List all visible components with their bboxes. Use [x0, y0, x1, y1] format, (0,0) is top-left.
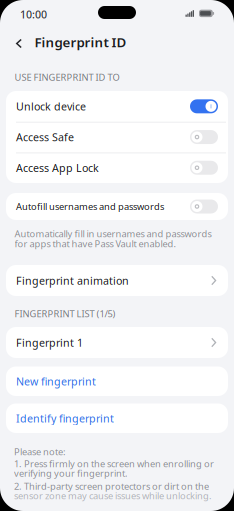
- staticText: 1. Press firmly on the screen when enrol…: [14, 457, 214, 470]
- staticText: for apps that have Pass Vault enabled.: [14, 237, 176, 250]
- staticText: Access App Lock: [16, 161, 99, 175]
- staticText: Autofill usernames and passwords: [16, 200, 164, 213]
- button[interactable]: Unlock device: [6, 91, 228, 122]
- staticText: 2. Third-party screen protectors or dirt…: [14, 480, 209, 492]
- staticText: Identify fingerprint: [16, 411, 114, 425]
- staticText: FINGERPRINT LIST (1/5): [14, 307, 115, 320]
- staticText: Fingerprint ID: [34, 33, 126, 51]
- staticText: sensor zone may cause issues while unloc…: [14, 489, 212, 502]
- staticText: USE FINGERPRINT ID TO: [14, 71, 119, 83]
- button[interactable]: Autofill usernames and passwords: [6, 193, 228, 220]
- staticText: Fingerprint animation: [16, 273, 129, 288]
- button[interactable]: Fingerprint 1: [6, 327, 228, 358]
- staticText: 10:00: [20, 7, 47, 22]
- staticText: Fingerprint 1: [16, 335, 83, 350]
- button[interactable]: Access App Lock: [6, 152, 228, 183]
- staticText: Access Safe: [16, 130, 74, 144]
- staticText: New fingerprint: [16, 374, 96, 388]
- button[interactable]: Identify fingerprint: [6, 403, 228, 433]
- button[interactable]: Access Safe: [6, 122, 228, 152]
- staticText: Unlock device: [16, 99, 86, 113]
- button[interactable]: New fingerprint: [6, 366, 228, 396]
- button[interactable]: Back: [10, 34, 28, 52]
- staticText: Automatically fill in usernames and pass…: [14, 227, 211, 240]
- button[interactable]: Fingerprint animation: [6, 265, 228, 296]
- staticText: Please note:: [14, 445, 66, 458]
- staticText: verifying your fingerprint.: [14, 467, 128, 479]
